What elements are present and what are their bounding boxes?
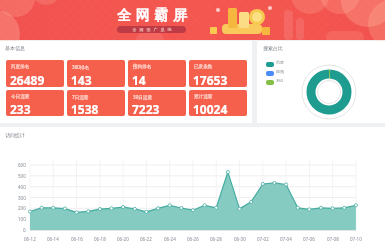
staticText: 搜狗 bbox=[276, 69, 284, 74]
button[interactable]: 7日流量 bbox=[67, 90, 125, 116]
button[interactable]: 今日流量 bbox=[6, 90, 64, 116]
staticText: 累计流量 bbox=[194, 94, 213, 100]
staticText: 1538 bbox=[71, 101, 99, 116]
staticText: 7223 bbox=[132, 101, 160, 116]
staticText: 400 bbox=[18, 184, 26, 190]
button[interactable] bbox=[266, 71, 274, 76]
staticText: 7日流量 bbox=[72, 94, 89, 100]
staticText: 百度排名 bbox=[11, 64, 30, 70]
staticText: 基本信息 bbox=[5, 45, 25, 51]
staticText: 06-24 bbox=[164, 236, 176, 242]
staticText: 已发条数 bbox=[194, 64, 213, 70]
staticText: 10024 bbox=[193, 101, 228, 116]
staticText: 06-26 bbox=[187, 236, 199, 242]
staticText: 07-08 bbox=[327, 236, 339, 242]
staticText: 06-22 bbox=[140, 236, 152, 242]
staticText: 30日流量 bbox=[133, 94, 153, 100]
staticText: 300 bbox=[18, 195, 26, 201]
staticText: 14 bbox=[132, 72, 146, 87]
staticText: 全网推广系统 bbox=[131, 27, 173, 32]
staticText: 06-18 bbox=[94, 236, 106, 242]
staticText: 06-30 bbox=[234, 236, 246, 242]
staticText: 06-12 bbox=[24, 236, 36, 242]
button[interactable]: 30日流量 bbox=[128, 90, 186, 116]
staticText: 搜索占比 bbox=[263, 45, 283, 51]
staticText: 100 bbox=[18, 216, 26, 222]
staticText: 360 bbox=[276, 78, 283, 83]
staticText: 06-28 bbox=[210, 236, 222, 242]
button[interactable] bbox=[266, 80, 274, 85]
staticText: 今日流量 bbox=[11, 94, 30, 100]
button[interactable]: 已发条数 bbox=[189, 60, 247, 87]
staticText: 06-14 bbox=[47, 236, 59, 242]
staticText: 百度 bbox=[276, 60, 284, 65]
staticText: 500 bbox=[18, 173, 26, 179]
button[interactable]: 搜狗排名 bbox=[128, 60, 186, 87]
staticText: 17653 bbox=[193, 72, 228, 87]
button[interactable]: 百度排名 bbox=[6, 60, 64, 87]
button[interactable]: 累计流量 bbox=[189, 90, 247, 116]
staticText: 07-10 bbox=[350, 236, 362, 242]
staticText: 06-20 bbox=[117, 236, 129, 242]
staticText: 06-16 bbox=[71, 236, 83, 242]
staticText: 200 bbox=[18, 205, 26, 211]
staticText: 07-02 bbox=[257, 236, 269, 242]
staticText: 全网霸屏 bbox=[115, 7, 189, 25]
staticText: 07-06 bbox=[303, 236, 315, 242]
staticText: 搜狗排名 bbox=[133, 64, 152, 70]
button[interactable] bbox=[266, 62, 274, 67]
staticText: 0 bbox=[23, 227, 26, 233]
staticText: 26489 bbox=[10, 72, 45, 87]
staticText: 600 bbox=[18, 162, 26, 168]
button[interactable]: 360排名 bbox=[67, 60, 125, 87]
staticText: 07-04 bbox=[280, 236, 292, 242]
staticText: 233 bbox=[10, 101, 31, 116]
staticText: 143 bbox=[71, 72, 92, 87]
staticText: 360排名 bbox=[72, 64, 90, 70]
staticText: 访问统计 bbox=[5, 132, 25, 138]
